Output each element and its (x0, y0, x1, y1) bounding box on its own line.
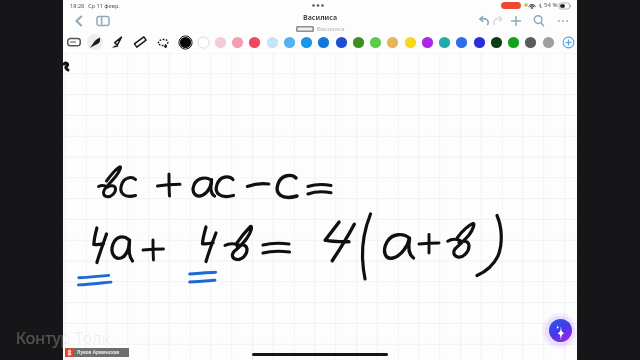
button[interactable]: Colour 20 (506, 35, 521, 50)
button[interactable]: Colour 15 (420, 35, 435, 50)
button[interactable]: Colour 5 (247, 35, 262, 50)
button[interactable]: Colour 11 (351, 35, 366, 50)
button[interactable]: Colour 19 (489, 35, 504, 50)
button[interactable]: Sidebar (93, 11, 113, 31)
staticText: Лукоя Армянская (77, 349, 120, 356)
button[interactable]: Eraser (132, 34, 148, 50)
button[interactable]: Search (530, 12, 548, 30)
button[interactable]: Colour 18 (472, 35, 487, 50)
button[interactable]: Undo (475, 12, 493, 30)
button[interactable]: Lasso (155, 34, 171, 50)
button[interactable]: Colour 12 (368, 35, 383, 50)
button[interactable]: Highlighter (109, 34, 125, 50)
button[interactable]: Colour 17 (454, 35, 469, 50)
button[interactable]: Colour 21 (523, 35, 538, 50)
button[interactable]: Text (66, 34, 82, 50)
button[interactable]: Colour 13 (385, 35, 400, 50)
button[interactable]: Pen (87, 34, 103, 50)
button[interactable]: More options (554, 12, 572, 30)
button[interactable]: Colour 7 (282, 35, 297, 50)
staticText: Василиса (303, 13, 338, 23)
button[interactable]: Colour 3 (213, 35, 228, 50)
staticText: 18:28 (70, 2, 85, 10)
button[interactable]: Add colour (561, 35, 576, 50)
staticText: 54 % (544, 1, 558, 9)
button[interactable]: Colour 1 (178, 35, 193, 50)
staticText: Контур Толк (16, 327, 63, 349)
button[interactable]: Colour 9 (316, 35, 331, 50)
button[interactable]: Colour 14 (403, 35, 418, 50)
staticText: Контур Толк (63, 327, 216, 349)
button[interactable]: Back (69, 11, 89, 31)
staticText: Ср 11 февр. (88, 2, 120, 10)
staticText: Василиса (317, 25, 345, 33)
button[interactable]: Colour 22 (541, 35, 556, 50)
button[interactable]: Add (507, 12, 525, 30)
button[interactable]: Colour 8 (299, 35, 314, 50)
button[interactable]: Colour 2 (196, 35, 211, 50)
button[interactable]: Redo (489, 12, 507, 30)
button[interactable]: Colour 10 (334, 35, 349, 50)
button[interactable]: Colour 4 (230, 35, 245, 50)
button[interactable]: Colour 16 (437, 35, 452, 50)
button[interactable]: Colour 6 (265, 35, 280, 50)
button[interactable]: AI assistant (549, 319, 572, 342)
